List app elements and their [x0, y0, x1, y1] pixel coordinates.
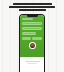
button[interactable]: [22, 32, 36, 35]
button[interactable]: [5, 3, 59, 11]
button[interactable]: [32, 37, 42, 40]
button[interactable]: [22, 37, 31, 40]
button[interactable]: Profile photo: [30, 43, 35, 48]
button[interactable]: [22, 22, 42, 25]
button[interactable]: [22, 27, 42, 30]
